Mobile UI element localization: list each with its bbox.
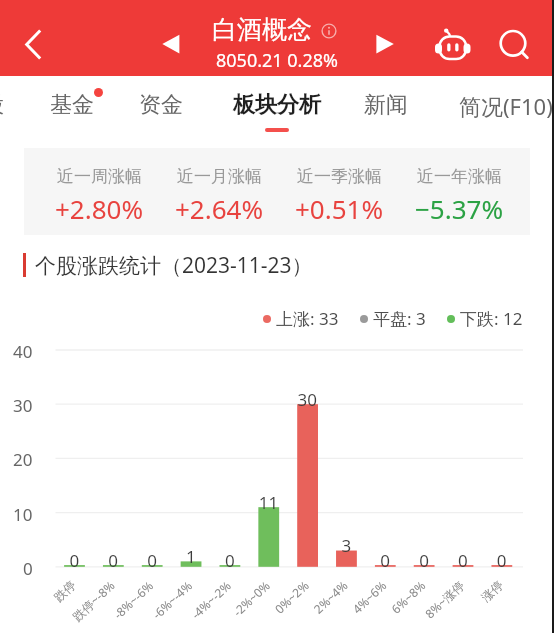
staticText: −5.37% (415, 191, 504, 226)
staticText: 新闻 (364, 91, 408, 119)
staticText: 上涨: 33 (276, 307, 339, 330)
staticText: +0.51% (295, 191, 384, 226)
staticText: 8050.21 0.28% (216, 48, 338, 73)
button[interactable]: 近一周涨幅 (39, 152, 159, 239)
staticText: 近一季涨幅 (297, 166, 382, 187)
staticText: 基金 (50, 91, 94, 119)
button[interactable]: Back (6, 16, 62, 72)
staticText: 股 (0, 91, 4, 119)
button[interactable]: 资金 (117, 76, 205, 145)
button[interactable]: 新闻 (342, 76, 430, 145)
staticText: 板块分析 (233, 91, 321, 119)
button[interactable]: 近一季涨幅 (279, 152, 399, 239)
staticText: 近一周涨幅 (57, 166, 142, 187)
button[interactable]: Previous sector (149, 23, 191, 65)
staticText: 近一年涨幅 (417, 166, 502, 187)
staticText: 简况(F10) (459, 91, 553, 121)
button[interactable]: Search (490, 20, 536, 66)
staticText: 个股涨跌统计（2023-11-23） (35, 251, 313, 280)
staticText: +2.80% (55, 191, 144, 226)
staticText: 资金 (139, 91, 183, 119)
staticText: 平盘: 3 (373, 307, 426, 330)
button[interactable]: 基金 (28, 76, 116, 145)
staticText: +2.64% (175, 191, 264, 226)
button[interactable]: 近一年涨幅 (399, 152, 519, 239)
button[interactable]: 近一月涨幅 (159, 152, 279, 239)
button[interactable]: 板块分析 (223, 76, 331, 145)
button[interactable]: 上涨: 33 (263, 307, 339, 330)
button[interactable]: Next sector (364, 23, 406, 65)
button[interactable]: 简况(F10) (444, 76, 554, 145)
staticText: 下跌: 12 (460, 307, 523, 330)
button[interactable]: AI assistant (429, 20, 475, 66)
button[interactable]: 股 (0, 76, 37, 145)
button[interactable]: 下跌: 12 (447, 307, 523, 330)
staticText: 近一月涨幅 (177, 166, 262, 187)
staticText: 白酒概念 (212, 14, 312, 45)
button[interactable]: 平盘: 3 (360, 307, 426, 330)
